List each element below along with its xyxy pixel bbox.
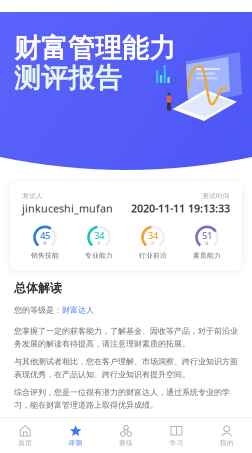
staticText: 分	[151, 241, 155, 245]
staticText: 素质能力	[193, 251, 221, 260]
staticText: 51	[202, 229, 212, 242]
staticText: 总体解读	[14, 280, 62, 295]
staticText: 销售技能	[31, 251, 59, 260]
staticText: 学习	[169, 439, 183, 447]
button[interactable]: 我的	[202, 422, 252, 450]
staticText: 赛练	[119, 439, 133, 447]
staticText: 测试时间	[202, 192, 230, 200]
staticText: 分	[97, 241, 101, 245]
staticText: 您掌握了一定的获客能力，了解基金、固收等产品，对于前沿业务发展的解读有待提高，请…	[14, 326, 238, 349]
staticText: 34	[148, 229, 158, 242]
staticText: 行业前沿	[139, 251, 167, 260]
staticText: 专业能力	[85, 251, 113, 260]
staticText: jinkuceshi_mufan	[22, 201, 113, 215]
staticText: 综合评判，您是一位很有潜力的财富达人，通过系统专业的学习，能在财富管理道路上取得…	[14, 387, 230, 410]
button[interactable]: 学习	[151, 422, 202, 450]
staticText: 与其他测试者相比，您在客户理解、市场洞察、跨行业知识方面表现优秀，在产品认知、跨…	[14, 357, 238, 379]
staticText: 您的等级是：	[14, 305, 62, 315]
staticText: 45	[40, 229, 50, 242]
button[interactable]: 赛练	[101, 422, 151, 450]
staticText: 财富达人	[62, 305, 94, 315]
staticText: 测评报告	[14, 62, 122, 95]
staticText: 评测	[69, 439, 83, 447]
button[interactable]: 首页	[0, 422, 50, 450]
staticText: 分	[205, 241, 209, 245]
staticText: 财富管理能力	[14, 32, 176, 65]
staticText: 测试人	[22, 192, 43, 200]
button[interactable]: 评测	[50, 422, 101, 450]
staticText: 我的	[220, 439, 234, 447]
staticText: 分	[43, 241, 47, 245]
staticText: 2020-11-11 19:13:33	[131, 201, 230, 215]
staticText: 34	[94, 229, 104, 242]
staticText: 首页	[18, 439, 32, 447]
